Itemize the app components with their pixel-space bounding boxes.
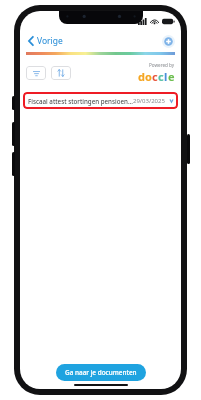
- staticText: Fiscaal attest stortingen pensioen...: [28, 97, 133, 105]
- button[interactable]: Fiscaal attest stortingen pensioen...: [25, 94, 176, 107]
- button[interactable]: Ga naar je documenten: [56, 364, 146, 381]
- button[interactable]: Toevoegen: [162, 35, 175, 48]
- staticText: o: [145, 69, 152, 84]
- staticText: e: [168, 69, 175, 84]
- staticText: d: [138, 69, 145, 84]
- button[interactable]: Filter: [26, 66, 46, 80]
- button[interactable]: Sorteren: [51, 66, 71, 80]
- button[interactable]: Vorige: [26, 33, 65, 49]
- staticText: 29/03/2025: [133, 97, 165, 105]
- staticText: l: [164, 69, 168, 84]
- staticText: Powered by: [149, 62, 175, 68]
- staticText: c: [152, 69, 158, 84]
- staticText: Ga naar je documenten: [65, 368, 137, 377]
- staticText: Vorige: [37, 35, 63, 47]
- staticText: c: [158, 69, 164, 84]
